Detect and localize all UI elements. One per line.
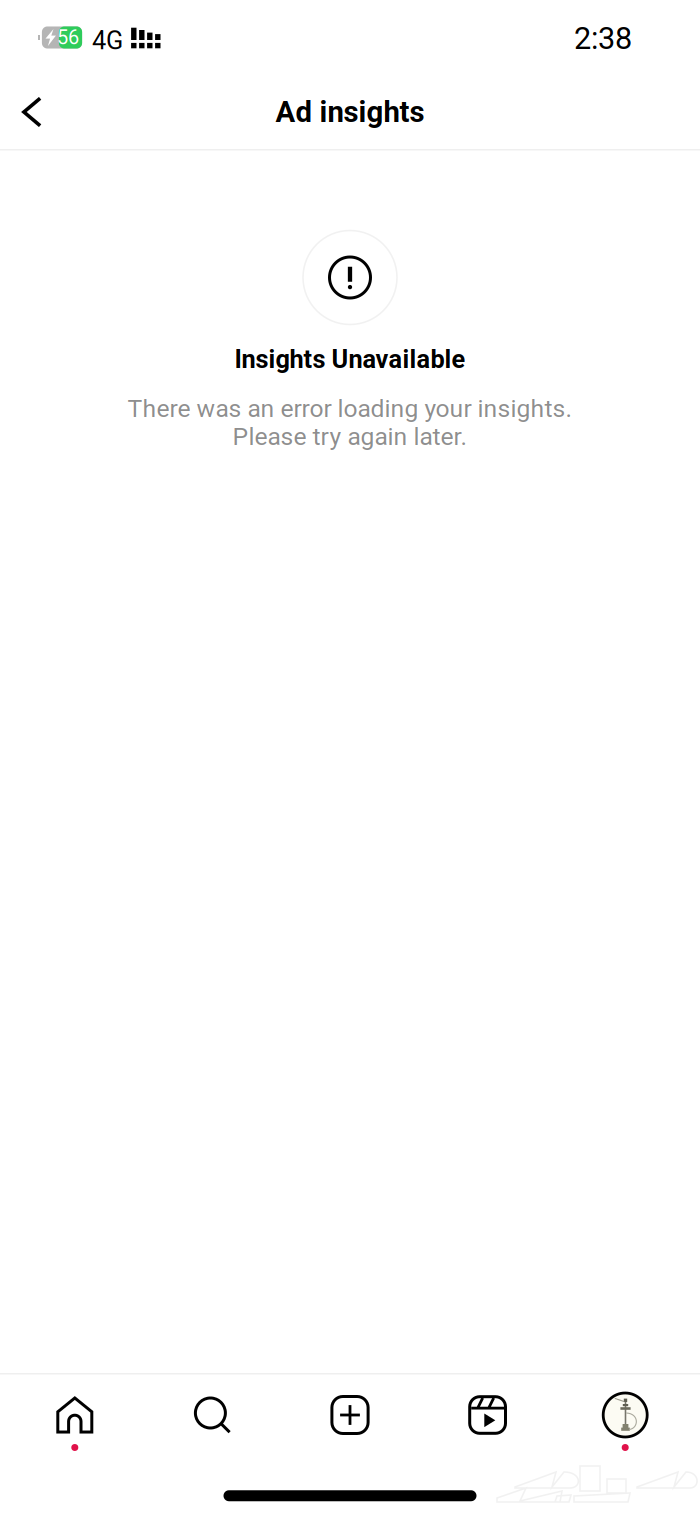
button[interactable]: Search	[144, 1374, 281, 1445]
button[interactable]: Reels	[419, 1374, 556, 1445]
button[interactable]: Home	[6, 1374, 144, 1445]
staticText: 2:38	[574, 20, 632, 56]
button[interactable]: Back	[0, 77, 64, 147]
staticText: 4G	[92, 26, 123, 55]
button[interactable]: Create	[281, 1374, 419, 1445]
button[interactable]: Profile	[556, 1374, 694, 1445]
staticText: Please try again later.	[232, 422, 467, 451]
staticText: Ad insights	[275, 95, 424, 129]
staticText: There was an error loading your insights…	[127, 394, 572, 423]
staticText: 56	[57, 26, 79, 49]
staticText: Insights Unavailable	[234, 344, 465, 374]
